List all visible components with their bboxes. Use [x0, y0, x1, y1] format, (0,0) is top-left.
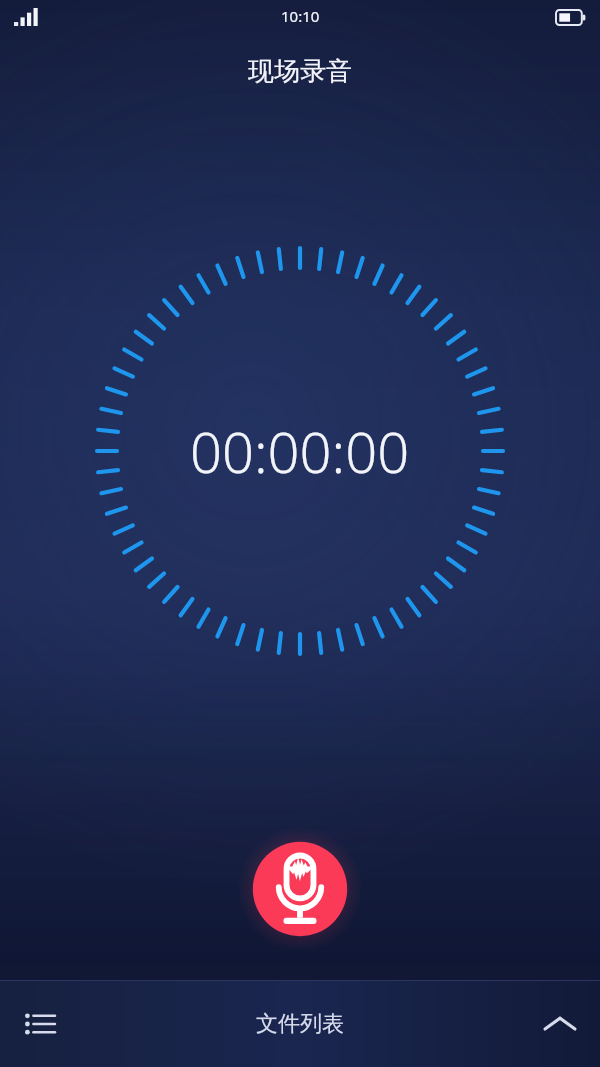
- staticText: 00:00:00: [190, 413, 410, 489]
- staticText: 10:10: [281, 6, 320, 26]
- button[interactable]: Recording list: [12, 996, 68, 1052]
- button[interactable]: 文件列表: [238, 1002, 362, 1046]
- staticText: 现场录音: [248, 55, 352, 88]
- button[interactable]: Expand: [532, 996, 588, 1052]
- button[interactable]: Start recording: [241, 830, 359, 948]
- staticText: 文件列表: [256, 1010, 344, 1038]
